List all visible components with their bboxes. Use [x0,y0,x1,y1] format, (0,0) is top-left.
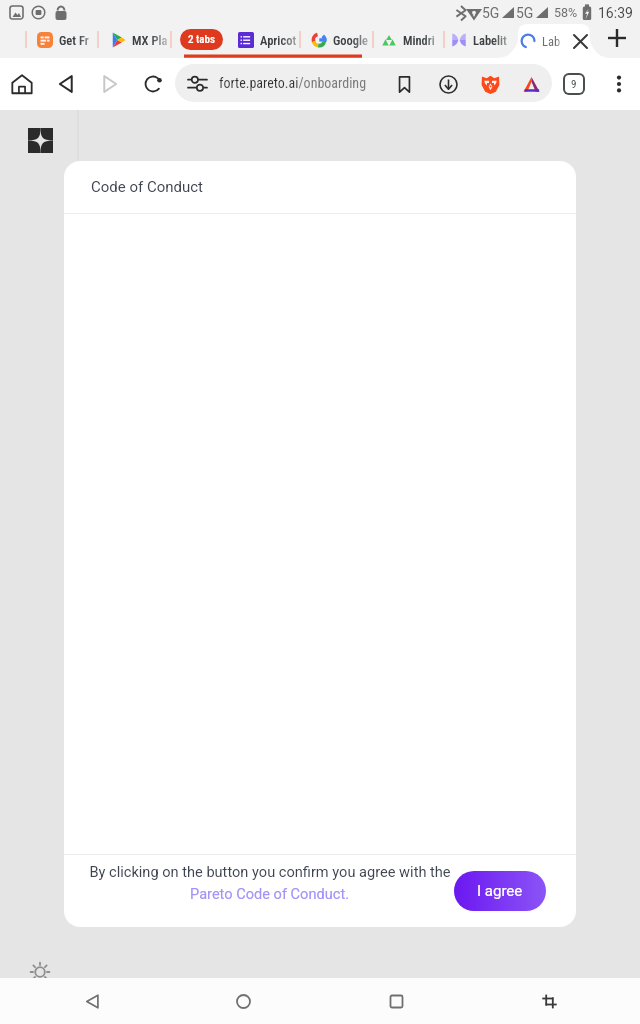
button[interactable]: Forward [90,64,130,104]
staticText: 58% [554,5,578,20]
button[interactable]: Brave shields [471,65,509,102]
button[interactable]: Reload [133,64,173,104]
button[interactable]: Recents [374,979,418,1023]
button[interactable]: MX Pla [110,26,174,54]
button[interactable]: forte.pareto.ai/onboarding [175,64,552,102]
button[interactable]: Downloads [429,65,467,102]
staticText: Code of Conduct [91,178,204,196]
button[interactable]: More options [602,67,636,101]
button[interactable]: Brave rewards [512,65,550,102]
staticText: Apricot [260,33,297,48]
staticText: I agree [477,882,523,900]
button[interactable]: Close tab [570,31,590,51]
staticText: 16:39 [598,5,633,21]
button[interactable]: Bookmark [385,65,423,102]
button[interactable]: New tab [601,22,633,54]
staticText: 5G [482,5,500,21]
button[interactable]: Get Fr [37,26,101,54]
button[interactable]: Pareto Code of Conduct. [190,885,350,902]
button[interactable]: Back [70,979,114,1023]
button[interactable]: Back [46,64,86,104]
button[interactable]: Tabs [557,67,591,101]
staticText: Get Fr [59,33,89,48]
staticText: forte.pareto.ai/onboarding [219,75,367,91]
button[interactable]: Screenshot [527,979,571,1023]
staticText: 9 [571,78,577,91]
button[interactable]: I agree [454,871,546,911]
button[interactable]: Google [311,26,377,54]
staticText: Google [333,33,369,48]
staticText: Mindri [403,33,435,48]
staticText: 5G [516,5,534,21]
button[interactable]: Mindri [381,26,447,54]
staticText: 2 tabs [188,33,216,46]
staticText: Labelit [473,33,507,48]
button[interactable]: 2 tabs [180,29,223,50]
button[interactable]: Apricot [238,26,308,54]
button[interactable]: Home [2,64,42,104]
staticText: Lab [542,34,561,49]
button[interactable]: Home [221,979,265,1023]
button[interactable]: Labelit [451,26,519,54]
staticText: By clicking on the button you confirm yo… [89,863,451,880]
staticText: MX Pla [132,33,168,48]
